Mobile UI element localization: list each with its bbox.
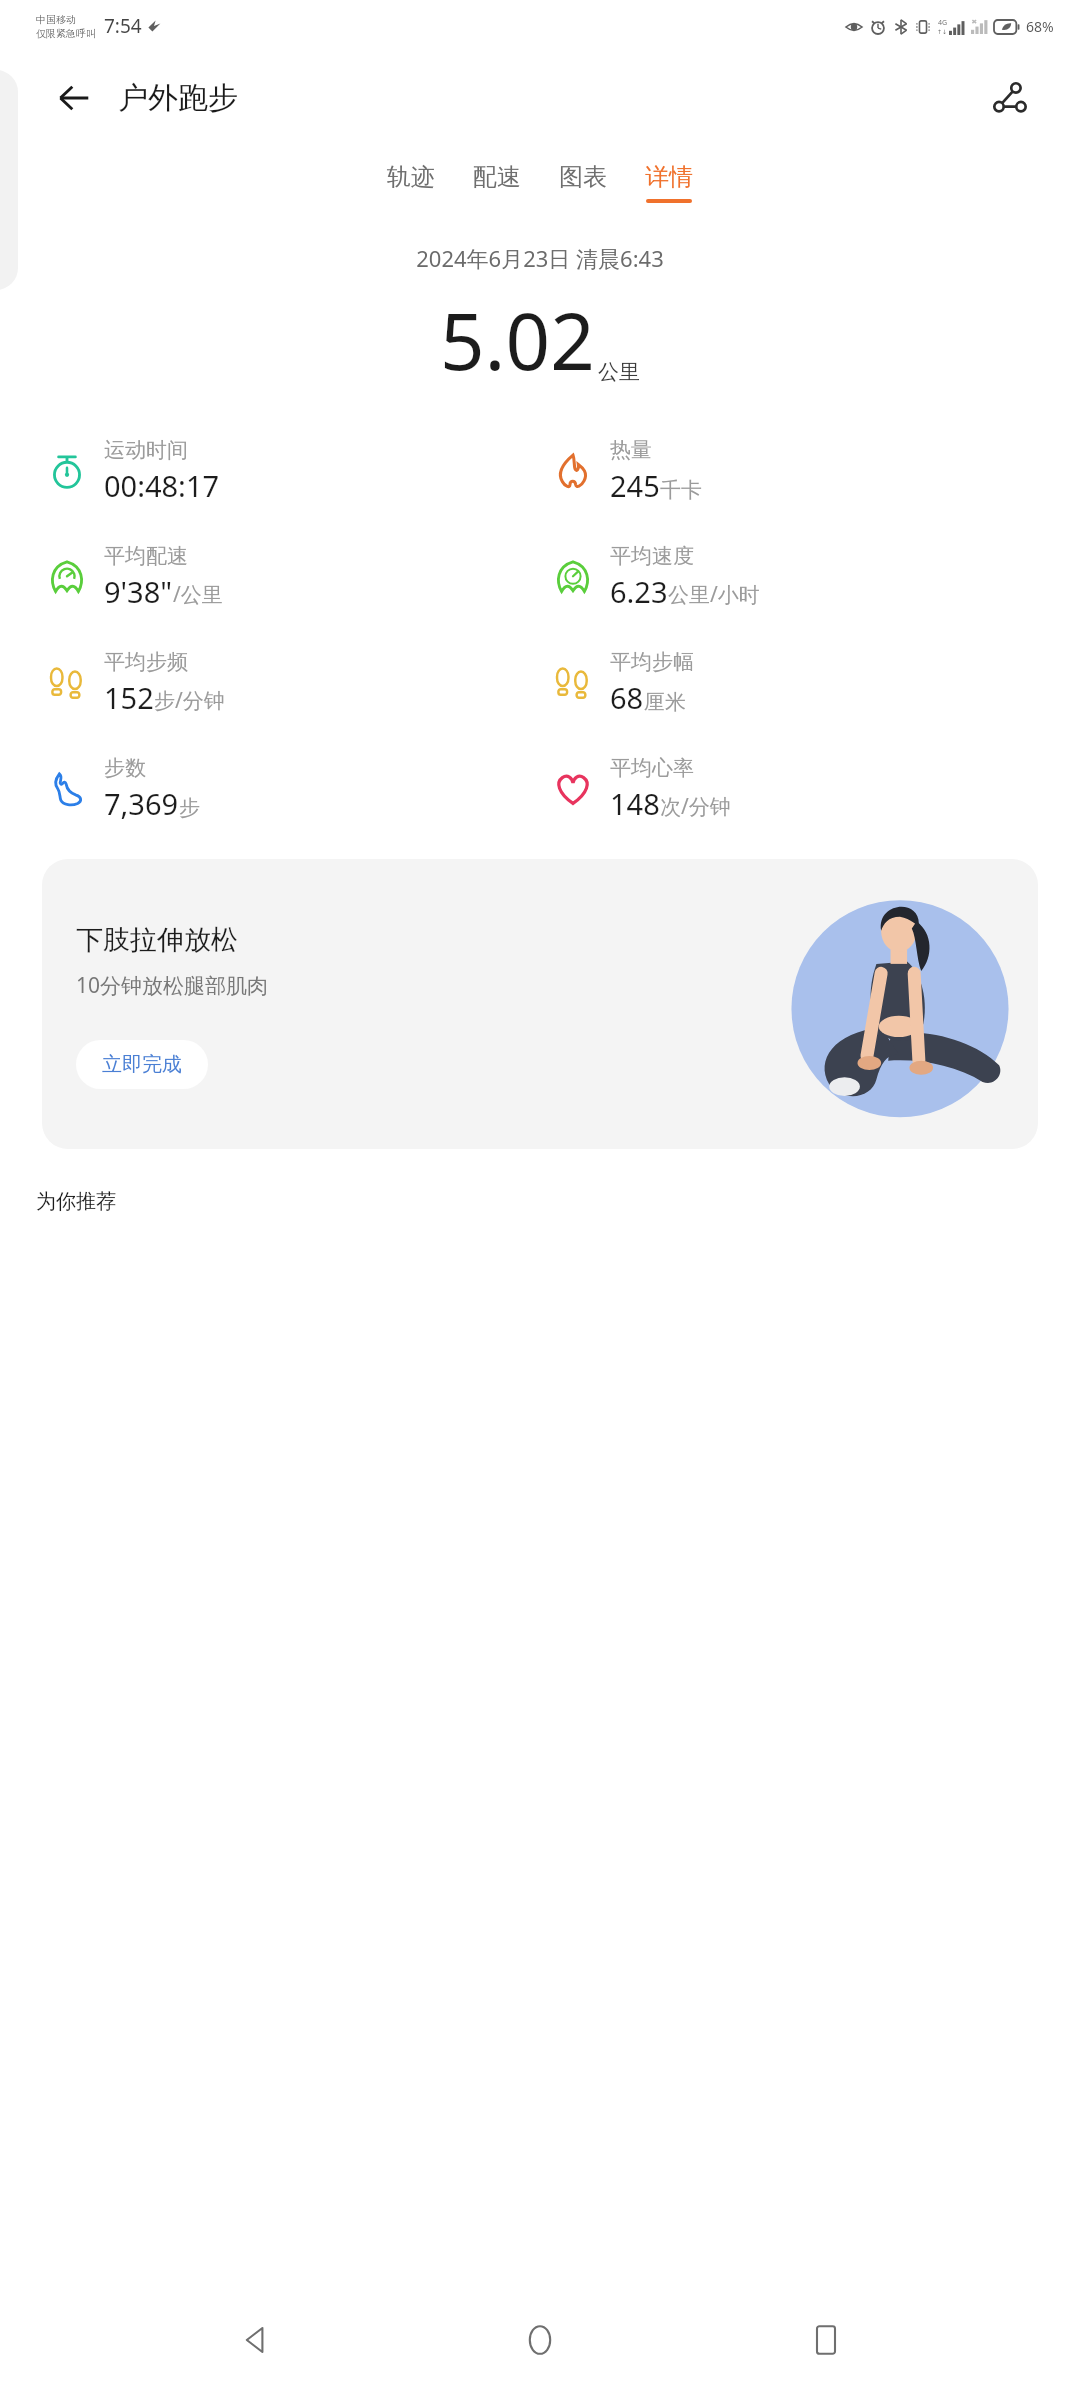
staticText: 热量: [610, 437, 652, 463]
button[interactable]: 平均心率: [550, 753, 1080, 825]
staticText: 轨迹: [387, 162, 435, 192]
staticText: 详情: [645, 162, 693, 192]
button[interactable]: 平均配速: [44, 541, 540, 613]
staticText: 立即完成: [102, 1052, 182, 1077]
staticText: 4G: [938, 18, 948, 28]
staticText: 中国移动: [36, 13, 76, 26]
button[interactable]: 主屏幕: [508, 2308, 572, 2372]
button[interactable]: 分享: [982, 72, 1034, 124]
staticText: 6.23: [610, 572, 668, 611]
staticText: 10分钟放松腿部肌肉: [76, 971, 269, 1000]
staticText: 平均步幅: [610, 649, 694, 675]
staticText: 运动时间: [104, 437, 188, 463]
button[interactable]: 平均速度: [550, 541, 1080, 613]
staticText: 步数: [104, 755, 146, 781]
button[interactable]: 最近任务: [794, 2308, 858, 2372]
staticText: 2024年6月23日 清晨6:43: [0, 243, 1080, 273]
button[interactable]: 热量: [550, 435, 1080, 507]
staticText: 公里: [598, 359, 640, 385]
staticText: 步/分钟: [154, 686, 225, 715]
staticText: 下肢拉伸放松: [76, 923, 238, 957]
staticText: 平均速度: [610, 543, 694, 569]
staticText: 为你推荐: [36, 1189, 116, 1214]
staticText: 配速: [473, 162, 521, 192]
staticText: 步: [179, 795, 200, 821]
staticText: 5.02: [440, 287, 595, 393]
staticText: 9'38": [104, 572, 173, 611]
staticText: 图表: [559, 162, 607, 192]
button[interactable]: 返回: [222, 2308, 286, 2372]
staticText: ↑↓: [937, 28, 948, 35]
staticText: 平均心率: [610, 755, 694, 781]
staticText: 平均配速: [104, 543, 188, 569]
staticText: 次/分钟: [660, 792, 731, 821]
button[interactable]: 平均步频: [44, 647, 540, 719]
staticText: 148: [610, 784, 660, 823]
button[interactable]: 配速: [465, 158, 529, 207]
button[interactable]: 运动时间: [44, 435, 540, 507]
staticText: 厘米: [644, 689, 686, 715]
button[interactable]: 下肢拉伸放松: [42, 859, 1038, 1149]
button[interactable]: 图表: [551, 158, 615, 207]
button[interactable]: 返回: [48, 72, 100, 124]
button[interactable]: 步数: [44, 753, 540, 825]
button[interactable]: 平均步幅: [550, 647, 1080, 719]
staticText: 户外跑步: [118, 79, 238, 117]
button[interactable]: 详情: [637, 158, 701, 207]
staticText: 152: [104, 678, 154, 717]
button[interactable]: 轨迹: [379, 158, 443, 207]
staticText: 平均步频: [104, 649, 188, 675]
staticText: 千卡: [660, 477, 702, 503]
staticText: /公里: [173, 580, 223, 609]
staticText: 245: [610, 466, 660, 505]
staticText: 仅限紧急呼叫: [36, 27, 96, 40]
staticText: 7,369: [104, 784, 179, 823]
staticText: 00:48:17: [104, 466, 220, 505]
staticText: 7:54: [104, 13, 142, 39]
staticText: 公里/小时: [668, 580, 760, 609]
button[interactable]: 立即完成: [76, 1040, 208, 1089]
staticText: 68: [610, 678, 644, 717]
staticText: 68%: [1026, 17, 1054, 36]
